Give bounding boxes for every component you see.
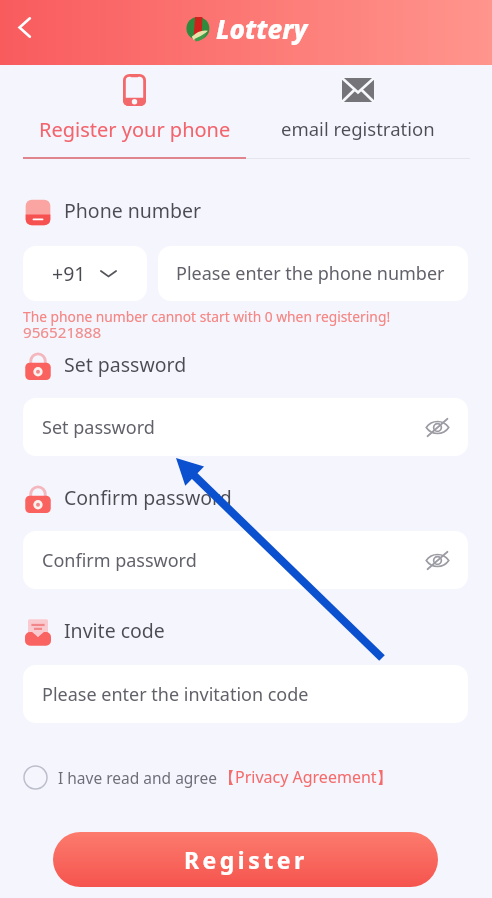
staticText: +91 [52, 260, 86, 287]
staticText: email registration [281, 116, 435, 141]
button[interactable]: email registration [246, 63, 469, 157]
staticText: Invite code [64, 617, 165, 644]
staticText: Register [184, 844, 308, 875]
button[interactable]: Please enter the invitation code [23, 665, 468, 723]
staticText: Register your phone [39, 116, 231, 143]
staticText: Please enter the phone number [176, 261, 445, 286]
staticText: Confirm password [42, 548, 197, 573]
button[interactable]: Toggle password visibility [420, 543, 454, 577]
button[interactable]: Confirm password [23, 531, 468, 589]
staticText: Set password [64, 351, 187, 378]
button[interactable]: I have read and agree [23, 764, 393, 790]
staticText: 【Privacy Agreement】 [219, 766, 393, 788]
button[interactable]: Set password [23, 398, 468, 456]
button[interactable]: Toggle password visibility [420, 410, 454, 444]
staticText: Phone number [64, 197, 202, 224]
button[interactable]: +91 [23, 246, 147, 301]
staticText: The phone number cannot start with 0 whe… [23, 307, 391, 326]
staticText: Lottery [216, 11, 308, 46]
button[interactable]: Back [2, 5, 46, 49]
staticText: Set password [42, 415, 155, 440]
staticText: Please enter the invitation code [42, 682, 309, 707]
staticText: I have read and agree [58, 767, 217, 788]
staticText: Confirm password [64, 484, 232, 511]
button[interactable]: Please enter the phone number [158, 246, 468, 301]
staticText: 956521888 [23, 322, 102, 343]
button[interactable]: Register [53, 832, 438, 887]
button[interactable]: Register your phone [23, 63, 246, 157]
